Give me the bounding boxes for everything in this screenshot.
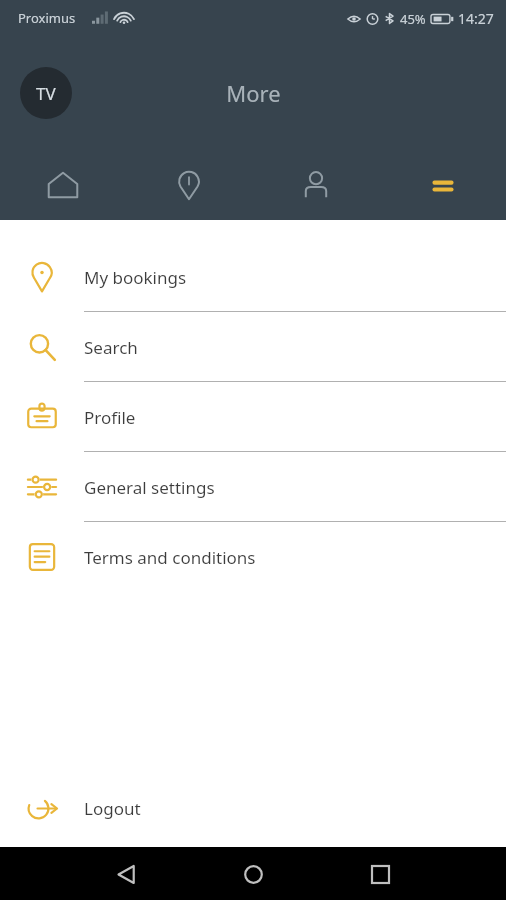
button[interactable]: Profile bbox=[252, 150, 379, 220]
button[interactable]: My bookings bbox=[0, 242, 506, 312]
staticText: TV bbox=[36, 82, 56, 105]
button[interactable]: Menu bbox=[379, 150, 506, 220]
button[interactable]: General settings bbox=[0, 452, 506, 522]
staticText: Terms and conditions bbox=[84, 546, 256, 569]
button[interactable]: Account bbox=[20, 67, 72, 119]
staticText: Search bbox=[84, 336, 138, 359]
staticText: Profile bbox=[84, 406, 136, 429]
button[interactable]: Home bbox=[0, 150, 126, 220]
button[interactable]: Home bbox=[233, 854, 273, 894]
staticText: Proximus bbox=[18, 9, 76, 27]
button[interactable]: Logout bbox=[0, 773, 506, 843]
staticText: Logout bbox=[84, 797, 141, 820]
button[interactable]: Profile bbox=[0, 382, 506, 452]
button[interactable]: Recents bbox=[360, 854, 400, 894]
staticText: More bbox=[226, 78, 281, 108]
button[interactable]: Map bbox=[126, 150, 252, 220]
staticText: My bookings bbox=[84, 266, 187, 289]
staticText: 14:27 bbox=[458, 9, 494, 28]
button[interactable]: Search bbox=[0, 312, 506, 382]
staticText: 45% bbox=[400, 10, 426, 28]
button[interactable]: Terms and conditions bbox=[0, 522, 506, 592]
staticText: General settings bbox=[84, 476, 215, 499]
button[interactable]: Back bbox=[106, 854, 146, 894]
